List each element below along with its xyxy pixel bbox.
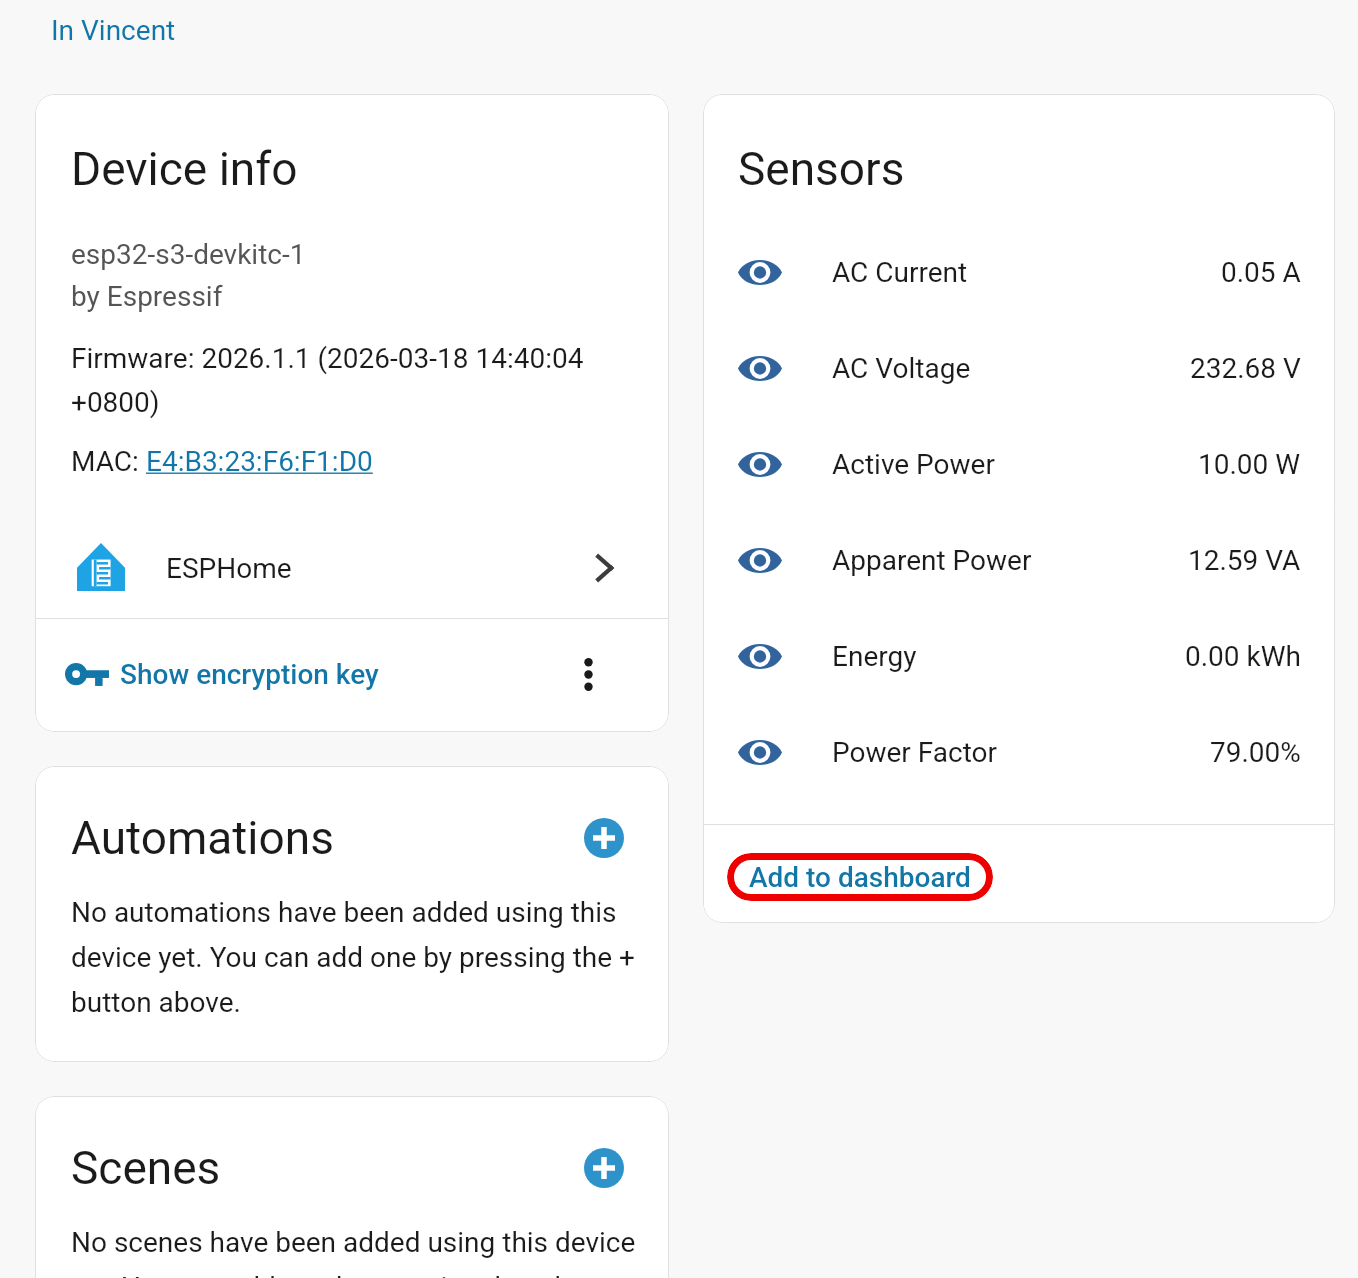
staticText: AC Current (832, 256, 968, 289)
staticText: Add to dashboard (749, 861, 971, 894)
button[interactable]: Show encryption key (35, 619, 669, 732)
staticText: Scenes (71, 1141, 221, 1195)
staticText: by Espressif (71, 280, 223, 313)
button[interactable]: Active Power (703, 416, 1335, 512)
staticText: Active Power (832, 448, 995, 481)
button[interactable]: Energy (703, 608, 1335, 704)
button[interactable]: In Vincent (51, 14, 176, 47)
staticText: Sensors (738, 142, 905, 196)
staticText: 10.00 W (1198, 448, 1301, 481)
staticText: 232.68 V (1190, 352, 1301, 385)
button[interactable]: Apparent Power (703, 512, 1335, 608)
staticText: Automations (71, 811, 334, 865)
staticText: Firmware: 2026.1.1 (2026-03-18 14:40:04 … (71, 342, 645, 419)
button[interactable]: Power Factor (703, 704, 1335, 800)
button[interactable]: Add (584, 1148, 624, 1188)
staticText: No scenes have been added using this dev… (71, 1226, 639, 1278)
staticText: No automations have been added using thi… (71, 896, 639, 1018)
staticText: Show encryption key (120, 658, 379, 691)
button[interactable]: E4:B3:23:F6:F1:D0 (146, 445, 373, 478)
button[interactable]: Add to dashboard (727, 853, 993, 901)
button[interactable]: More options (562, 648, 614, 700)
staticText: MAC: (71, 445, 146, 478)
button[interactable]: ESPHome (35, 531, 669, 611)
staticText: 0.00 kWh (1185, 640, 1301, 673)
button[interactable]: Add (584, 818, 624, 858)
staticText: Device info (71, 142, 298, 196)
staticText: 79.00% (1210, 736, 1301, 769)
staticText: Power Factor (832, 736, 998, 769)
staticText: esp32-s3-devkitc-1 (71, 238, 306, 271)
staticText: 12.59 VA (1188, 544, 1301, 577)
staticText: 0.05 A (1221, 256, 1301, 289)
button[interactable]: AC Voltage (703, 320, 1335, 416)
staticText: ESPHome (166, 552, 292, 585)
staticText: Apparent Power (832, 544, 1032, 577)
staticText: AC Voltage (832, 352, 971, 385)
button[interactable]: AC Current (703, 224, 1335, 320)
staticText: Energy (832, 640, 917, 673)
